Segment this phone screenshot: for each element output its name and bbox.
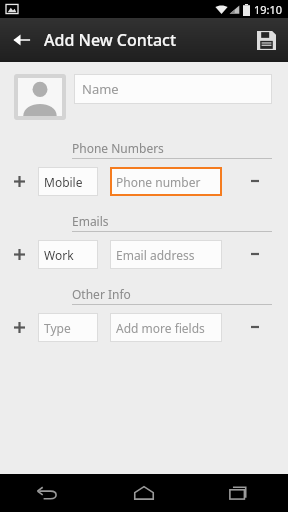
button[interactable]: Phone number — [110, 167, 222, 196]
button[interactable]: Add photo — [18, 78, 62, 116]
button[interactable]: Home — [96, 474, 192, 512]
staticText: Add more fields — [116, 320, 205, 336]
button[interactable]: Mobile — [38, 167, 98, 196]
button[interactable]: Email address — [110, 240, 222, 269]
button[interactable]: Recent apps — [192, 474, 288, 512]
button[interactable]: Work — [38, 240, 98, 269]
button[interactable]: Remove field — [222, 311, 288, 343]
button[interactable]: Remove field — [222, 165, 288, 197]
staticText: 19:10 — [254, 2, 283, 17]
staticText: Mobile — [44, 174, 83, 190]
staticText: Email address — [116, 247, 195, 263]
button[interactable]: Back — [0, 18, 44, 62]
staticText: Phone number — [116, 174, 201, 190]
button[interactable]: Remove field — [222, 238, 288, 270]
button[interactable]: Add field — [0, 311, 38, 343]
staticText: Add New Contact — [44, 29, 177, 51]
staticText: Other Info — [72, 286, 131, 302]
staticText: Name — [82, 80, 119, 98]
staticText: Phone Numbers — [72, 140, 164, 156]
button[interactable]: Save — [244, 18, 288, 62]
staticText: Emails — [72, 213, 109, 229]
button[interactable]: Back — [0, 474, 96, 512]
button[interactable]: Name — [74, 74, 272, 104]
button[interactable]: Add field — [0, 165, 38, 197]
button[interactable]: Type — [38, 313, 98, 342]
staticText: Work — [44, 247, 74, 263]
button[interactable]: Add field — [0, 238, 38, 270]
button[interactable]: Add more fields — [110, 313, 222, 342]
staticText: Type — [44, 320, 71, 336]
